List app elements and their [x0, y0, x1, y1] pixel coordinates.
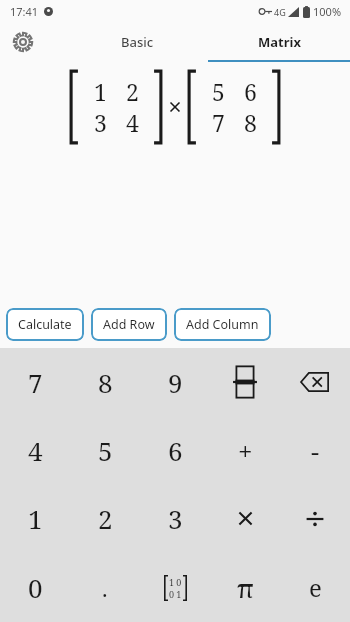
- staticText: 0 1: [169, 588, 182, 600]
- button[interactable]: 3: [140, 484, 210, 553]
- button[interactable]: Add Column: [174, 308, 271, 341]
- staticText: Calculate: [18, 316, 72, 333]
- staticText: e: [309, 571, 322, 604]
- staticText: 4: [28, 433, 43, 468]
- staticText: 6: [244, 76, 257, 107]
- staticText: 3: [94, 107, 107, 138]
- staticText: Add Column: [186, 316, 259, 333]
- button[interactable]: Add Row: [91, 308, 167, 341]
- button[interactable]: 8: [234, 107, 266, 138]
- staticText: 9: [168, 365, 183, 400]
- button[interactable]: Multiply: [210, 484, 280, 553]
- button[interactable]: 8: [70, 348, 140, 416]
- button[interactable]: 2: [116, 76, 148, 107]
- staticText: 7: [28, 365, 43, 400]
- staticText: 2: [126, 76, 139, 107]
- button[interactable]: Basic: [66, 22, 208, 62]
- staticText: 5: [212, 76, 225, 107]
- button[interactable]: 5: [202, 76, 234, 107]
- button[interactable]: 1: [84, 76, 116, 107]
- button[interactable]: Identity matrix: [140, 553, 210, 622]
- staticText: 4: [126, 107, 139, 138]
- button[interactable]: 0: [0, 553, 70, 622]
- button[interactable]: Backspace: [280, 348, 350, 416]
- staticText: Add Row: [103, 316, 155, 333]
- staticText: 0: [28, 570, 43, 605]
- staticText: .: [102, 573, 108, 603]
- button[interactable]: 6: [140, 416, 210, 484]
- button[interactable]: Divide: [280, 484, 350, 553]
- staticText: 8: [244, 107, 257, 138]
- button[interactable]: Settings: [6, 25, 40, 59]
- staticText: +: [238, 433, 253, 468]
- button[interactable]: Matrix: [208, 22, 350, 62]
- staticText: 5: [98, 433, 113, 468]
- staticText: 4G: [274, 6, 286, 18]
- button[interactable]: 5: [70, 416, 140, 484]
- button[interactable]: 4: [116, 107, 148, 138]
- button[interactable]: 9: [140, 348, 210, 416]
- staticText: -: [311, 433, 320, 468]
- button[interactable]: 1: [0, 484, 70, 553]
- button[interactable]: 2: [70, 484, 140, 553]
- staticText: 6: [168, 433, 183, 468]
- button[interactable]: 7: [0, 348, 70, 416]
- button[interactable]: .: [70, 553, 140, 622]
- staticText: 7: [212, 107, 225, 138]
- staticText: 1 0: [169, 576, 182, 588]
- button[interactable]: Calculate: [6, 308, 84, 341]
- button[interactable]: 4: [0, 416, 70, 484]
- staticText: 1: [28, 501, 43, 536]
- button[interactable]: 6: [234, 76, 266, 107]
- staticText: Matrix: [258, 33, 301, 51]
- button[interactable]: -: [280, 416, 350, 484]
- staticText: π: [237, 570, 254, 605]
- staticText: 8: [98, 365, 113, 400]
- staticText: 1: [94, 76, 107, 107]
- staticText: Basic: [121, 33, 154, 51]
- button[interactable]: Fraction: [210, 348, 280, 416]
- button[interactable]: 3: [84, 107, 116, 138]
- staticText: 100%: [313, 4, 342, 19]
- button[interactable]: π: [210, 553, 280, 622]
- staticText: 3: [168, 501, 183, 536]
- button[interactable]: e: [280, 553, 350, 622]
- button[interactable]: 7: [202, 107, 234, 138]
- staticText: 2: [98, 501, 113, 536]
- button[interactable]: +: [210, 416, 280, 484]
- staticText: 17:41: [10, 4, 39, 19]
